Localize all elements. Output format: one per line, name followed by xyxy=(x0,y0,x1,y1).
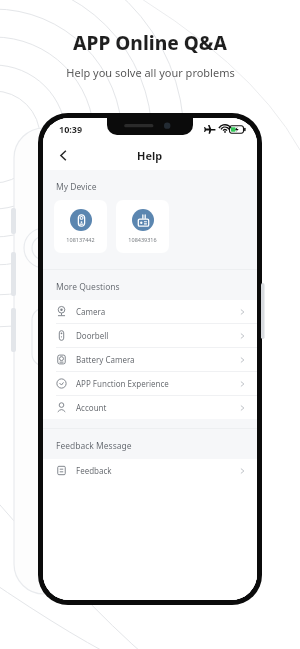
staticText: 10:39 xyxy=(59,123,83,135)
staticText: 108439316 xyxy=(128,236,157,243)
button[interactable]: Feedback xyxy=(43,459,257,482)
staticText: My Device xyxy=(56,181,97,193)
staticText: APP Function Experience xyxy=(76,378,240,389)
staticText: Camera xyxy=(76,306,240,317)
button[interactable]: APP Function Experience xyxy=(43,372,257,395)
staticText: More Questions xyxy=(56,281,120,293)
button[interactable]: 108137442 xyxy=(54,200,107,253)
staticText: 108137442 xyxy=(66,236,95,243)
staticText: Help xyxy=(137,148,163,163)
staticText: Doorbell xyxy=(76,330,240,341)
staticText: Battery Camera xyxy=(76,354,240,365)
staticText: Account xyxy=(76,402,240,413)
button[interactable]: Account xyxy=(43,396,257,419)
staticText: Help you solve all your problems xyxy=(66,65,235,80)
button[interactable]: Back xyxy=(51,143,75,167)
button[interactable]: Doorbell xyxy=(43,324,257,347)
staticText: Feedback Message xyxy=(56,440,132,452)
button[interactable]: Battery Camera xyxy=(43,348,257,371)
staticText: APP Online Q&A xyxy=(73,30,227,56)
button[interactable]: Camera xyxy=(43,300,257,323)
staticText: Feedback xyxy=(76,465,240,476)
button[interactable]: 108439316 xyxy=(116,200,169,253)
